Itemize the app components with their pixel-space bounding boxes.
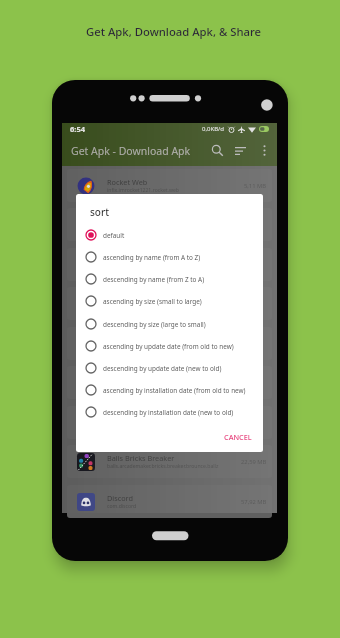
button[interactable]: CANCEL [218,428,258,446]
staticText: sort [90,205,110,219]
button[interactable]: Discord [67,485,272,518]
button[interactable]: descending by update date (new to old) [76,357,263,379]
button[interactable]: ascending by name (from A to Z) [76,246,263,268]
button[interactable]: More options [254,140,275,161]
button[interactable]: descending by name (from Z to A) [76,268,263,290]
staticText: 57,92 MB [241,498,267,506]
staticText: 6:54 [70,124,85,134]
staticText: default [103,231,125,240]
button[interactable] [67,248,272,281]
staticText: com.discord [107,503,137,510]
staticText: descending by update date (new to old) [103,364,222,373]
staticText: descending by name (from Z to A) [103,275,205,284]
button[interactable] [67,366,272,399]
button[interactable]: ascending by installation date (from old… [76,379,263,401]
staticText: 5,11 MB [244,182,267,190]
staticText: infix.imrocket1221.rocket.web [107,187,179,194]
button[interactable] [67,327,272,360]
staticText: ascending by update date (from old to ne… [103,342,234,351]
button[interactable] [67,208,272,241]
staticText: Balls Bricks Breaker [107,453,175,463]
button[interactable]: descending by size (large to small) [76,313,263,335]
button[interactable]: Sort [230,140,251,161]
staticText: Get Apk - Download Apk [71,144,191,158]
button[interactable] [67,406,272,439]
staticText: balls.arcademaker.bricks.breaker.brounce… [107,463,219,470]
button[interactable]: ascending by size (small to large) [76,290,263,312]
button[interactable]: descending by installation date (new to … [76,401,263,423]
staticText: descending by installation date (new to … [103,408,234,417]
button[interactable]: default [76,224,263,246]
staticText: 22,59 MB [241,458,267,466]
staticText: ascending by name (from A to Z) [103,253,201,262]
staticText: 0,0KB/d [202,125,225,133]
staticText: Rocket Web [107,177,148,187]
staticText: ascending by installation date (from old… [103,386,246,395]
button[interactable]: Balls Bricks Breaker [67,445,272,478]
staticText: CANCEL [224,432,252,442]
button[interactable] [67,287,272,320]
staticText: Get Apk, Download Apk, & Share [86,24,261,39]
button[interactable]: Search [207,140,228,161]
button[interactable]: ascending by update date (from old to ne… [76,335,263,357]
staticText: descending by size (large to small) [103,320,206,329]
staticText: Discord [107,493,133,503]
button[interactable]: Rocket Web [67,169,272,202]
staticText: ascending by size (small to large) [103,297,202,306]
